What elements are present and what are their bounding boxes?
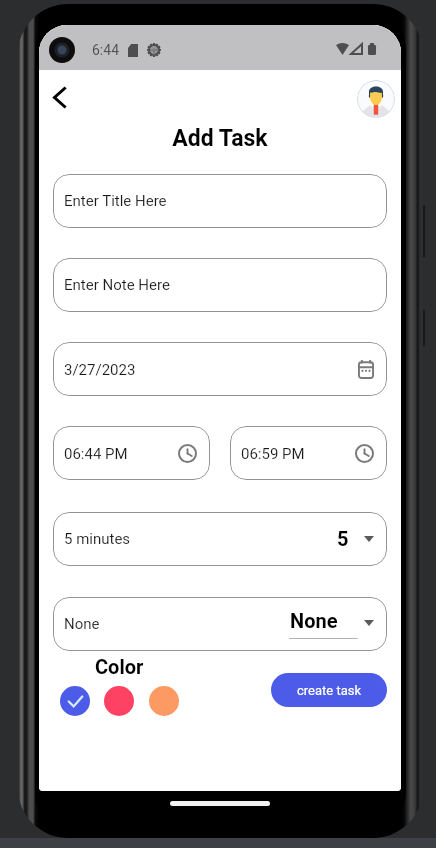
button[interactable]: Blue colour	[60, 686, 90, 716]
staticText: Add Task	[39, 125, 401, 152]
button[interactable]: create task	[271, 673, 387, 707]
button[interactable]: 06:59 PM	[230, 426, 387, 480]
button[interactable]: Orange colour	[149, 686, 179, 716]
staticText: 5 minutes	[64, 530, 131, 548]
button[interactable]: None	[53, 597, 387, 651]
button[interactable]: Enter Note Here	[53, 258, 387, 312]
staticText: None	[290, 609, 338, 632]
staticText: 06:44 PM	[64, 445, 128, 463]
button[interactable]: Profile	[357, 80, 395, 118]
button[interactable]: 3/27/2023	[53, 342, 387, 396]
staticText: 6:44	[92, 42, 119, 58]
staticText: 06:59 PM	[241, 445, 305, 463]
staticText: Enter Note Here	[64, 276, 170, 294]
staticText: Color	[95, 655, 144, 678]
button[interactable]: 5 minutes	[53, 512, 387, 566]
button[interactable]: Enter Title Here	[53, 174, 387, 228]
staticText: create task	[297, 683, 362, 698]
staticText: 3/27/2023	[64, 361, 136, 379]
button[interactable]: Back	[39, 75, 81, 119]
staticText: Enter Title Here	[64, 192, 167, 210]
staticText: 5	[337, 527, 349, 550]
staticText: None	[64, 615, 100, 633]
button[interactable]: Pink colour	[104, 686, 134, 716]
button[interactable]: 06:44 PM	[53, 426, 210, 480]
